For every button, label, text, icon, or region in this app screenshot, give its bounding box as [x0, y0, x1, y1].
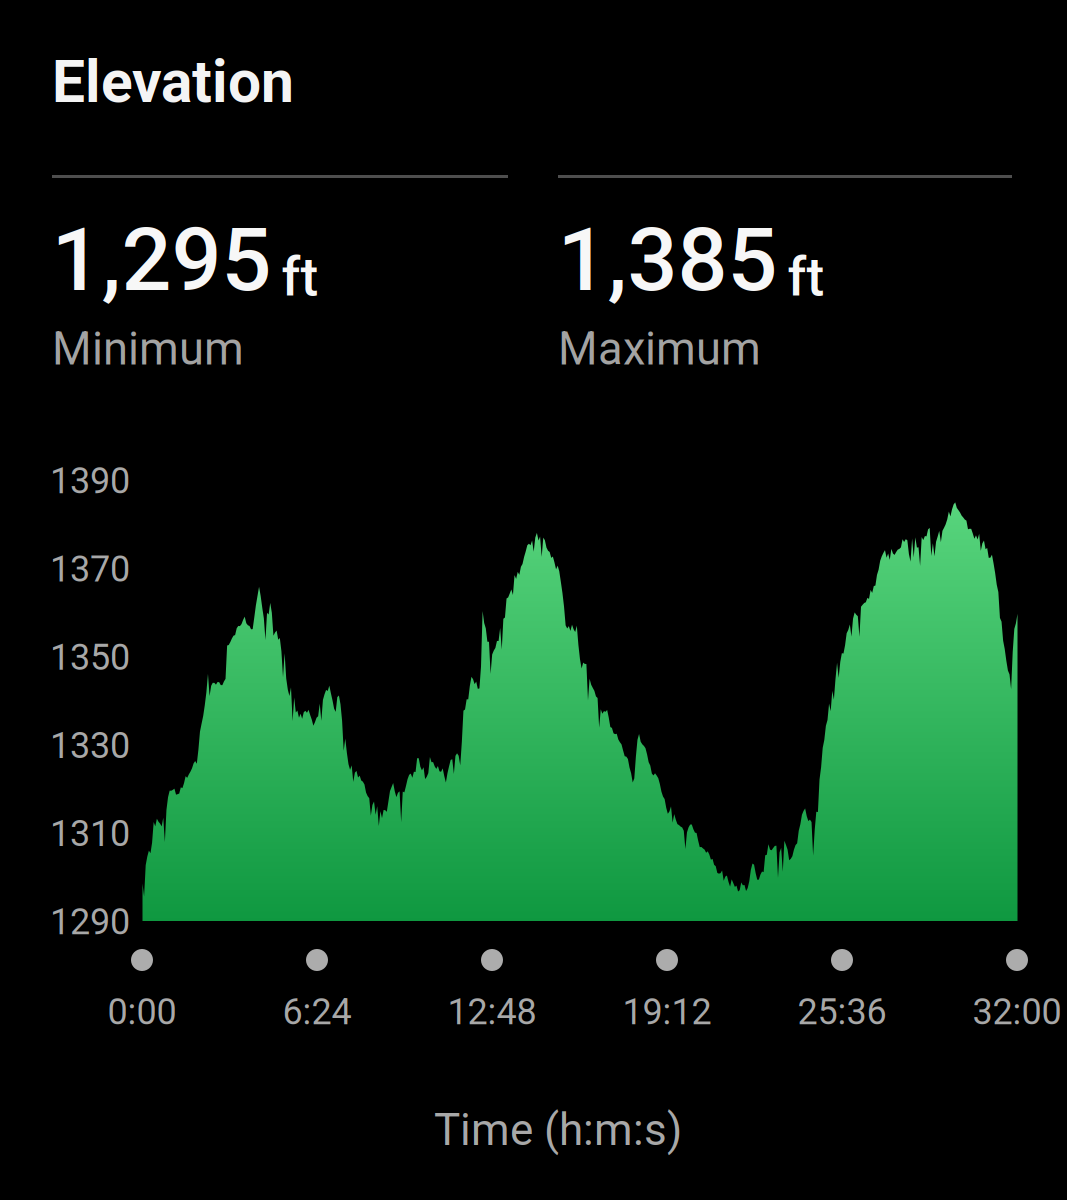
- staticText: 25:36: [797, 991, 886, 1033]
- staticText: 12:48: [447, 991, 536, 1033]
- staticText: 1,295: [51, 208, 271, 311]
- staticText: 1310: [50, 813, 130, 855]
- staticText: 6:24: [282, 991, 351, 1033]
- staticText: 19:12: [622, 991, 711, 1033]
- staticText: 1290: [50, 901, 130, 943]
- button[interactable]: Maximum elevation 1,385 feet: [558, 175, 1012, 379]
- staticText: 1,385: [557, 208, 777, 311]
- staticText: Maximum: [558, 322, 761, 375]
- staticText: 1330: [50, 724, 130, 767]
- staticText: 0:00: [107, 991, 176, 1033]
- staticText: 32:00: [972, 991, 1061, 1033]
- staticText: 1390: [50, 460, 130, 502]
- staticText: 1350: [50, 636, 130, 678]
- staticText: ft: [787, 246, 824, 309]
- button[interactable]: Minimum elevation 1,295 feet: [52, 175, 508, 379]
- staticText: ft: [281, 246, 318, 309]
- staticText: Minimum: [52, 322, 244, 375]
- staticText: Elevation: [52, 48, 294, 116]
- staticText: 1370: [50, 548, 130, 590]
- staticText: Time (h:m:s): [434, 1104, 682, 1156]
